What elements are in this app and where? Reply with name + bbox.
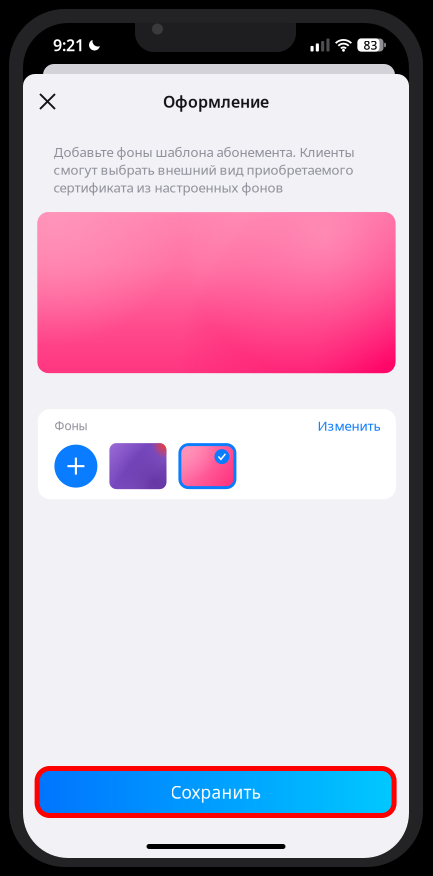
button[interactable]: Сохранить bbox=[35, 766, 397, 818]
staticText: 9:21 bbox=[53, 34, 84, 56]
button[interactable]: Close bbox=[29, 83, 66, 120]
staticText: 83 bbox=[363, 37, 377, 53]
staticText: Фоны bbox=[54, 418, 87, 434]
staticText: Сохранить bbox=[171, 780, 261, 803]
staticText: Изменить bbox=[317, 417, 380, 434]
button[interactable]: Add background bbox=[54, 445, 97, 488]
staticText: Добавьте фоны шаблона абонемента. Клиент… bbox=[53, 143, 354, 196]
button[interactable]: Pink background, selected bbox=[178, 443, 236, 489]
button[interactable]: Изменить bbox=[317, 417, 380, 434]
button[interactable]: Purple background bbox=[109, 443, 166, 489]
staticText: Оформление bbox=[163, 91, 269, 112]
